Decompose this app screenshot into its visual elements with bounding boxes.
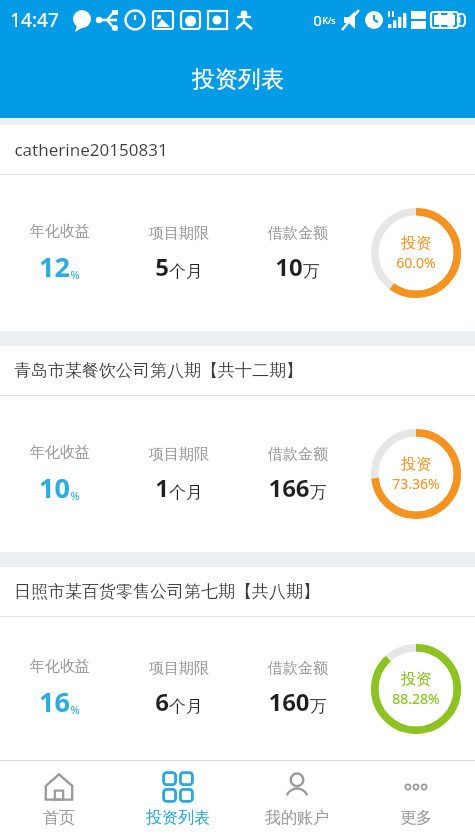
staticText: 投资 xyxy=(401,455,431,474)
button[interactable]: 我的账户 xyxy=(237,761,356,839)
staticText: 年化收益 xyxy=(30,657,90,676)
staticText: 60.0% xyxy=(396,253,436,272)
button[interactable]: 日照市某百货零售公司第七期【共八期】 xyxy=(0,567,475,760)
staticText: 投资 xyxy=(401,670,431,689)
staticText: 73.36% xyxy=(392,474,440,493)
staticText: 万 xyxy=(310,696,327,717)
button[interactable]: catherine20150831 xyxy=(0,125,475,331)
other: 投资列表 xyxy=(163,772,193,802)
other: 首页 xyxy=(44,772,74,802)
staticText: 万 xyxy=(303,261,320,282)
staticText: 借款金额 xyxy=(268,659,328,678)
staticText: 万 xyxy=(310,482,327,503)
staticText: catherine20150831 xyxy=(14,138,168,161)
staticText: 14:47 xyxy=(10,7,59,33)
staticText: 12 xyxy=(39,248,70,285)
button[interactable]: 首页 xyxy=(0,761,118,839)
button[interactable]: 更多 xyxy=(356,761,475,839)
staticText: 10 xyxy=(275,250,303,283)
staticText: % xyxy=(70,267,80,282)
staticText: 1 xyxy=(155,471,169,504)
staticText: 88.28% xyxy=(392,689,440,708)
staticText: 青岛市某餐饮公司第八期【共十二期】 xyxy=(14,360,303,381)
staticText: 个月 xyxy=(169,261,203,282)
staticText: 更多 xyxy=(400,808,432,828)
staticText: 项目期限 xyxy=(149,659,209,678)
staticText: 年化收益 xyxy=(30,222,90,241)
staticText: 10 xyxy=(39,469,70,506)
staticText: 首页 xyxy=(43,808,75,828)
staticText: 我的账户 xyxy=(265,808,329,828)
staticText: 借款金额 xyxy=(268,224,328,243)
button[interactable]: 青岛市某餐饮公司第八期【共十二期】 xyxy=(0,346,475,552)
staticText: 160 xyxy=(268,685,310,718)
staticText: 借款金额 xyxy=(268,445,328,464)
staticText: % xyxy=(70,702,80,717)
staticText: 个月 xyxy=(169,482,203,503)
staticText: 项目期限 xyxy=(149,224,209,243)
staticText: 100 xyxy=(434,7,467,33)
button[interactable]: 投资列表 xyxy=(118,761,237,839)
other: 我的账户 xyxy=(282,772,312,802)
staticText: 个月 xyxy=(169,696,203,717)
staticText: % xyxy=(70,488,80,503)
staticText: 166 xyxy=(268,471,310,504)
staticText: 5 xyxy=(155,250,169,283)
staticText: 6 xyxy=(155,685,169,718)
other: 更多 xyxy=(401,772,431,802)
staticText: 日照市某百货零售公司第七期【共八期】 xyxy=(14,581,320,602)
staticText: 年化收益 xyxy=(30,443,90,462)
staticText: 投资列表 xyxy=(192,65,284,94)
staticText: 投资 xyxy=(401,234,431,253)
staticText: 项目期限 xyxy=(149,445,209,464)
staticText: 16 xyxy=(39,683,70,720)
staticText: 投资列表 xyxy=(146,808,210,828)
staticText: K/s xyxy=(322,14,336,26)
staticText: 0 xyxy=(313,10,322,30)
